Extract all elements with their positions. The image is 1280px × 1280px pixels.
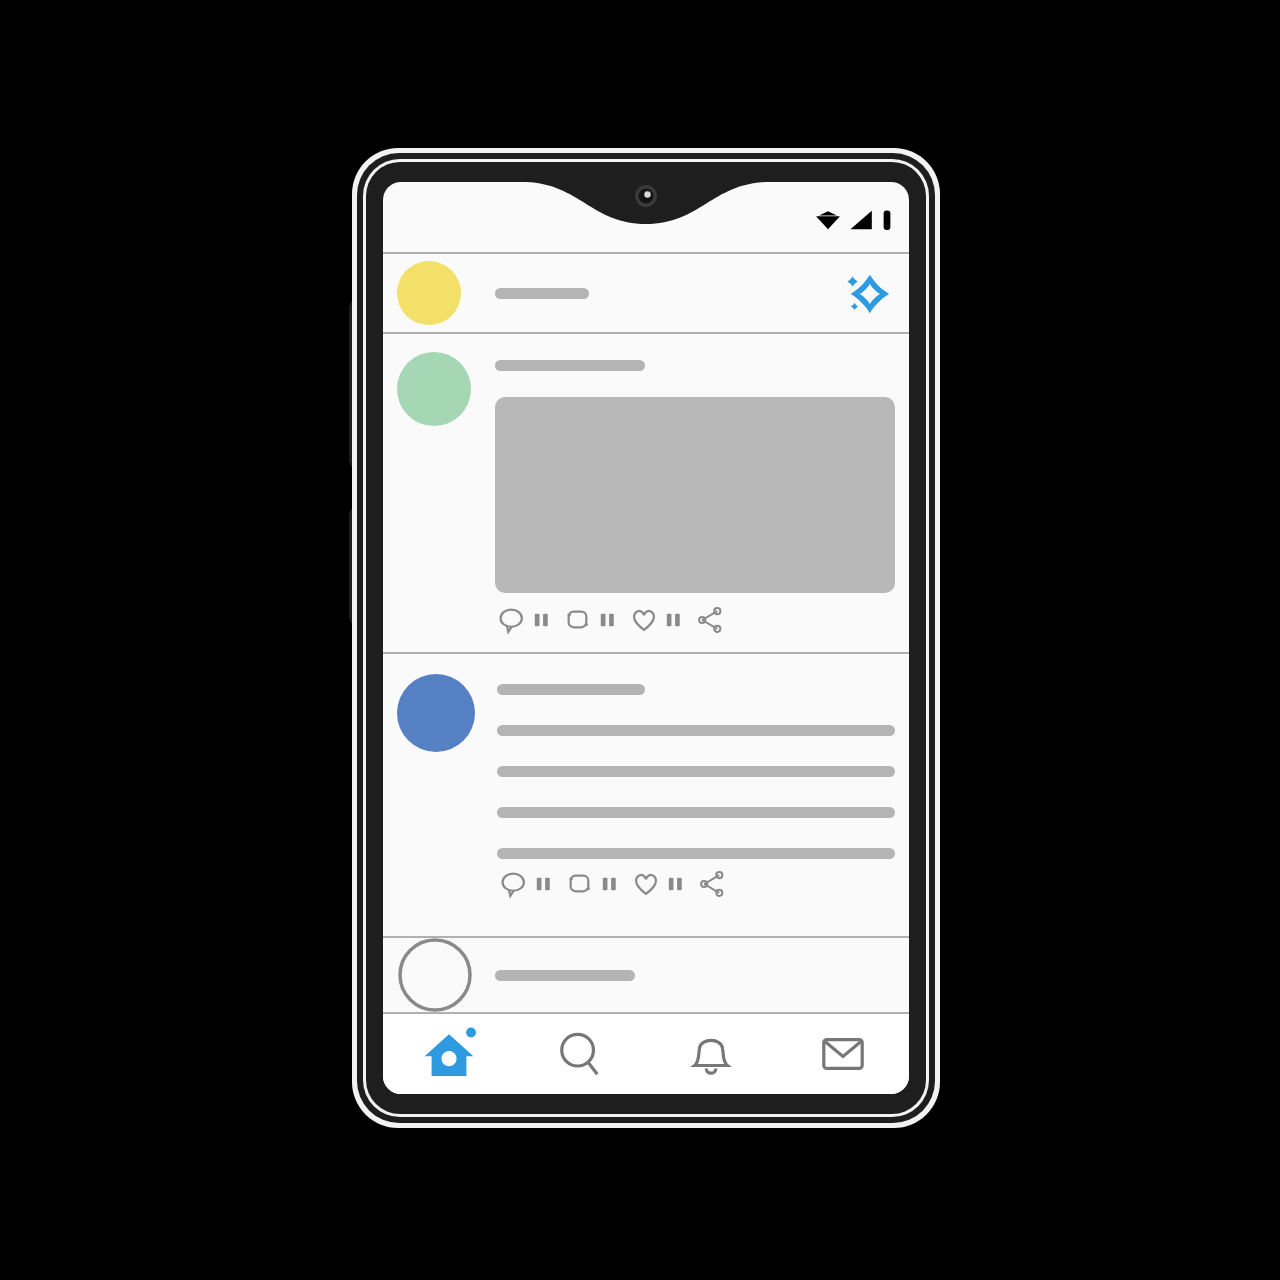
button[interactable]: Search (514, 1014, 645, 1094)
button[interactable]: Repost (561, 603, 595, 637)
button[interactable]: Share (695, 867, 729, 901)
button[interactable]: Reply (495, 603, 529, 637)
button[interactable]: Notifications (645, 1014, 777, 1094)
button[interactable]: Reply (383, 654, 909, 936)
button[interactable]: Share (693, 603, 727, 637)
button[interactable]: Reply (497, 867, 531, 901)
button[interactable]: Like (627, 603, 661, 637)
button[interactable]: AI sparkle (383, 254, 909, 332)
button[interactable]: Repost (563, 867, 597, 901)
button[interactable] (383, 938, 909, 1012)
button[interactable]: Like (629, 867, 663, 901)
button[interactable]: Home (383, 1014, 514, 1094)
button[interactable]: Reply (383, 334, 909, 652)
button[interactable]: AI sparkle (839, 265, 895, 321)
button[interactable]: Messages (777, 1014, 909, 1094)
